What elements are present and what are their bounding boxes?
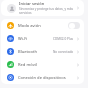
staticText: Sincroniza y protege tus datos, y más se… [19, 7, 73, 15]
button[interactable]: Modo avión [68, 22, 80, 29]
button[interactable]: Red móvil [1, 58, 84, 71]
staticText: CDMX2.0 Plus [53, 37, 74, 41]
button[interactable]: Modo avión [1, 19, 84, 32]
staticText: Wi-Fi [18, 36, 28, 42]
staticText: Conexión de dispositivos [18, 75, 66, 81]
button[interactable]: Iniciar sesión [1, 0, 84, 16]
staticText: Modo avión [18, 23, 41, 29]
staticText: Iniciar sesión [19, 1, 45, 6]
staticText: Bluetooth [18, 49, 37, 55]
button[interactable]: Conexión de dispositivos [1, 71, 84, 84]
staticText: Red móvil [18, 62, 37, 68]
staticText: No conectado [53, 50, 74, 54]
button[interactable]: Wi-Fi [1, 32, 84, 45]
button[interactable]: Bluetooth [1, 45, 84, 58]
